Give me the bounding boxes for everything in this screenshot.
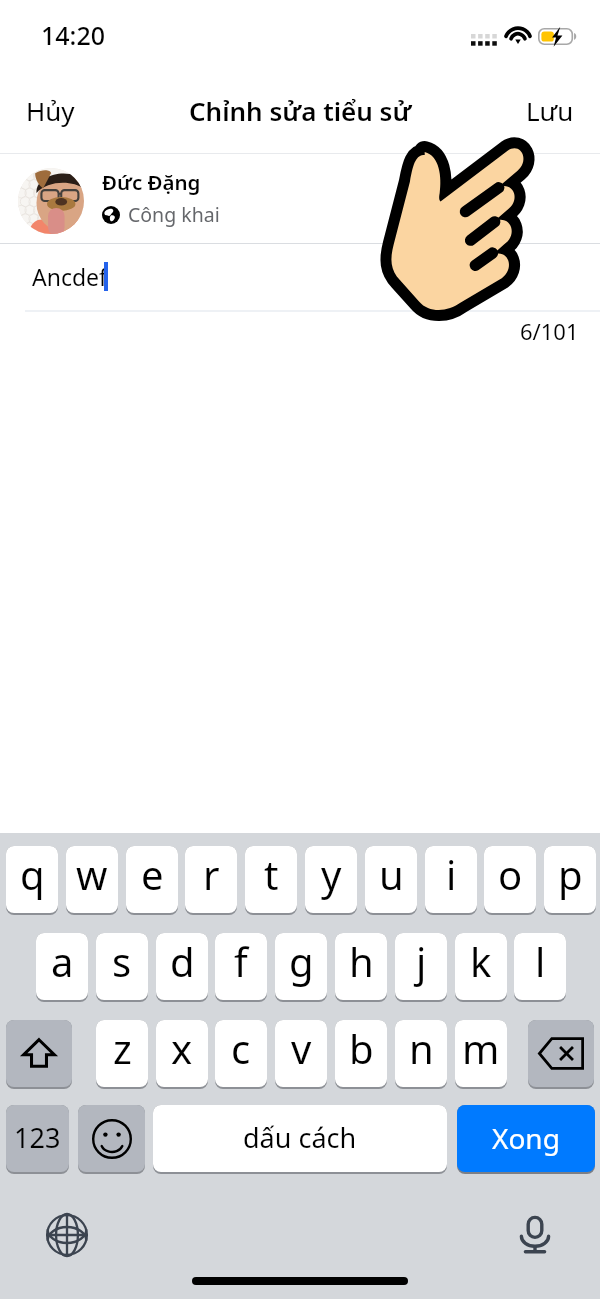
staticText: g [289, 934, 314, 988]
button[interactable]: Change keyboard [40, 1208, 94, 1262]
staticText: Ancdef [32, 261, 107, 292]
button[interactable]: Dictate [508, 1208, 562, 1262]
button[interactable]: d [156, 933, 208, 1000]
button[interactable]: g [275, 933, 327, 1000]
button[interactable]: e [126, 846, 178, 913]
button[interactable]: 123 [6, 1105, 69, 1172]
staticText: x [171, 1021, 193, 1075]
staticText: 6/101 [520, 316, 579, 346]
button[interactable]: y [305, 846, 357, 913]
button[interactable]: m [455, 1020, 507, 1087]
staticText: v [291, 1021, 312, 1075]
staticText: h [349, 934, 374, 988]
button[interactable]: s [96, 933, 148, 1000]
staticText: n [409, 1021, 434, 1075]
button[interactable]: v [275, 1020, 327, 1087]
staticText: Đức Đặng [102, 168, 201, 196]
staticText: u [379, 847, 404, 901]
staticText: Hủy [26, 93, 75, 128]
staticText: w [76, 847, 108, 901]
staticText: f [234, 934, 248, 988]
staticText: 123 [14, 1119, 61, 1156]
staticText: q [20, 847, 45, 901]
button[interactable]: t [245, 846, 297, 913]
staticText: i [446, 847, 457, 901]
button[interactable]: Backspace [528, 1020, 594, 1087]
staticText: e [141, 847, 164, 901]
button[interactable]: k [455, 933, 507, 1000]
staticText: l [535, 934, 546, 988]
button[interactable]: x [156, 1020, 208, 1087]
button[interactable]: Shift [6, 1020, 72, 1087]
staticText: c [231, 1021, 251, 1075]
button[interactable]: p [544, 846, 596, 913]
staticText: m [462, 1021, 500, 1075]
button[interactable]: u [365, 846, 417, 913]
button[interactable]: n [395, 1020, 447, 1087]
staticText: dấu cách [243, 1119, 357, 1156]
button[interactable]: z [96, 1020, 148, 1087]
staticText: b [349, 1021, 374, 1075]
staticText: p [558, 847, 583, 901]
staticText: j [416, 934, 427, 988]
button[interactable]: h [335, 933, 387, 1000]
button[interactable]: b [335, 1020, 387, 1087]
staticText: Lưu [526, 93, 574, 128]
button[interactable]: Bio text field [0, 244, 600, 310]
staticText: t [264, 847, 279, 901]
staticText: Công khai [128, 201, 220, 228]
button[interactable]: Xong [457, 1105, 595, 1172]
staticText: d [170, 934, 195, 988]
button[interactable]: c [215, 1020, 267, 1087]
button[interactable]: Hủy [0, 73, 120, 148]
staticText: z [113, 1021, 132, 1075]
button[interactable]: q [6, 846, 58, 913]
button[interactable]: w [66, 846, 118, 913]
button[interactable]: f [215, 933, 267, 1000]
staticText: o [498, 847, 523, 901]
button[interactable]: l [514, 933, 566, 1000]
staticText: Xong [492, 1119, 560, 1157]
button[interactable]: j [395, 933, 447, 1000]
staticText: s [112, 934, 132, 988]
button[interactable]: a [36, 933, 88, 1000]
button[interactable]: Đức Đặng [0, 158, 600, 243]
staticText: r [203, 847, 220, 901]
button[interactable]: Lưu [480, 73, 600, 148]
button[interactable]: r [185, 846, 237, 913]
button[interactable]: Emoji [78, 1105, 145, 1172]
button[interactable]: o [484, 846, 536, 913]
staticText: y [321, 847, 342, 901]
button[interactable]: i [425, 846, 477, 913]
staticText: k [470, 934, 492, 988]
button[interactable]: dấu cách [153, 1105, 447, 1172]
staticText: a [51, 934, 74, 988]
staticText: Chỉnh sửa tiểu sử [189, 93, 412, 128]
staticText: 14:20 [41, 18, 106, 52]
